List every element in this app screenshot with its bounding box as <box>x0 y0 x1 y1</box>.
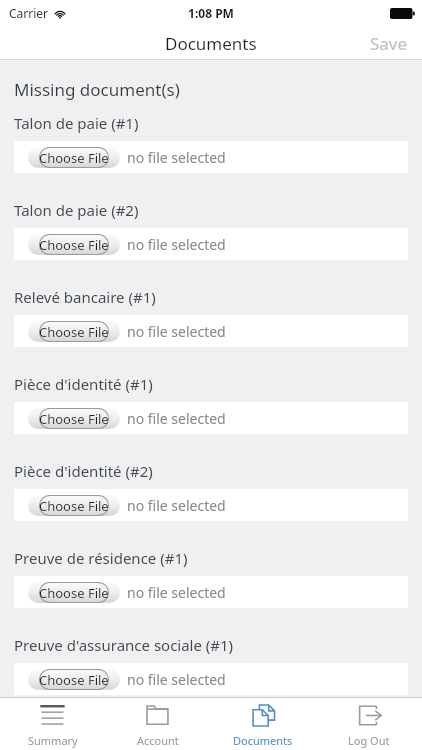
staticText: Preuve de résidence (#1) <box>14 548 188 568</box>
button[interactable]: Choose File <box>14 402 408 434</box>
button[interactable]: Choose File <box>28 669 120 690</box>
button[interactable]: Summary <box>0 698 105 750</box>
staticText: Talon de paie (#2) <box>14 200 139 220</box>
staticText: Documents <box>165 32 257 55</box>
button[interactable]: Choose File <box>14 489 408 521</box>
staticText: no file selected <box>127 670 226 689</box>
button[interactable]: Choose File <box>28 495 120 516</box>
staticText: Relevé bancaire (#1) <box>14 287 156 307</box>
staticText: Carrier <box>9 5 49 21</box>
button[interactable]: Documents <box>210 698 316 750</box>
button[interactable]: Choose File <box>28 321 120 342</box>
staticText: Account <box>137 733 179 748</box>
staticText: no file selected <box>127 322 226 341</box>
button[interactable]: Choose File <box>14 663 408 695</box>
staticText: Missing document(s) <box>14 78 180 101</box>
button[interactable]: Save <box>356 27 422 60</box>
staticText: Preuve d'assurance sociale (#1) <box>14 635 234 655</box>
staticText: Summary <box>28 733 78 748</box>
button[interactable]: Choose File <box>28 408 120 429</box>
staticText: Choose File <box>39 323 109 341</box>
staticText: no file selected <box>127 496 226 515</box>
staticText: Choose File <box>39 149 109 167</box>
staticText: Pièce d'identité (#1) <box>14 374 153 394</box>
staticText: no file selected <box>127 409 226 428</box>
staticText: Save <box>370 32 408 55</box>
staticText: 1:08 PM <box>188 5 234 21</box>
staticText: Choose File <box>39 584 109 602</box>
staticText: no file selected <box>127 235 226 254</box>
button[interactable]: Choose File <box>28 147 120 168</box>
staticText: Log Out <box>348 733 390 748</box>
button[interactable]: Choose File <box>14 315 408 347</box>
staticText: Documents <box>233 733 293 748</box>
button[interactable]: Log Out <box>316 698 422 750</box>
button[interactable]: Choose File <box>28 234 120 255</box>
button[interactable]: Choose File <box>14 228 408 260</box>
staticText: Pièce d'identité (#2) <box>14 461 153 481</box>
staticText: Choose File <box>39 236 109 254</box>
staticText: Talon de paie (#1) <box>14 113 139 133</box>
button[interactable]: Account <box>105 698 210 750</box>
staticText: Choose File <box>39 671 109 689</box>
staticText: Choose File <box>39 497 109 515</box>
staticText: no file selected <box>127 583 226 602</box>
button[interactable]: Choose File <box>28 582 120 603</box>
staticText: no file selected <box>127 148 226 167</box>
staticText: Choose File <box>39 410 109 428</box>
button[interactable]: Choose File <box>14 141 408 173</box>
button[interactable]: Choose File <box>14 576 408 608</box>
